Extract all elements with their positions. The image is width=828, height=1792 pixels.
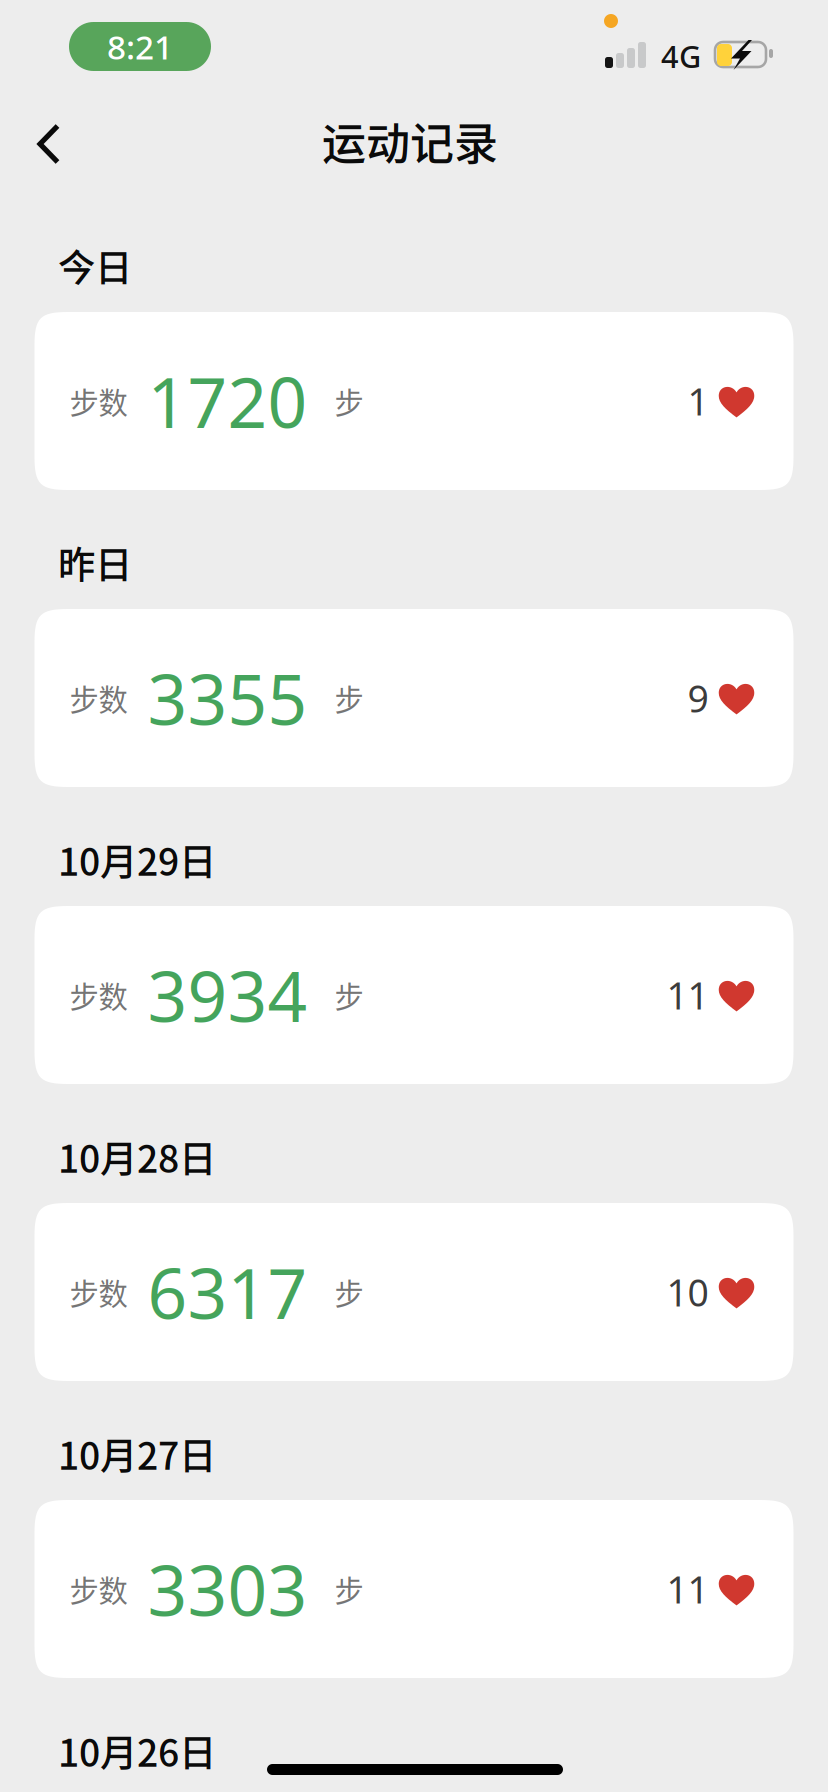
staticText: 1720 — [147, 355, 307, 447]
staticText: 步数 — [69, 677, 127, 719]
button[interactable]: 步数 — [34, 312, 793, 490]
staticText: 步数 — [69, 380, 127, 422]
button[interactable]: 返回 — [0, 99, 91, 189]
staticText: 步数 — [69, 1271, 127, 1313]
staticText: 今日 — [58, 238, 132, 293]
staticText: 步 — [334, 380, 363, 422]
staticText: 10月27日 — [58, 1426, 216, 1481]
staticText: 步 — [334, 1568, 363, 1610]
staticText: 步 — [334, 1271, 363, 1313]
staticText: 10月28日 — [58, 1129, 216, 1184]
staticText: 3355 — [147, 652, 307, 744]
staticText: 步 — [334, 974, 363, 1016]
button[interactable]: 步数 — [34, 1500, 793, 1678]
button[interactable]: 步数 — [34, 1203, 793, 1381]
staticText: 9 — [687, 673, 708, 723]
staticText: 步数 — [69, 974, 127, 1016]
staticText: 8:21 — [107, 24, 173, 69]
staticText: 步 — [334, 677, 363, 719]
staticText: 步数 — [69, 1568, 127, 1610]
staticText: 3303 — [147, 1543, 307, 1635]
staticText: 11 — [666, 1564, 708, 1614]
button[interactable]: 步数 — [34, 609, 793, 787]
staticText: 3934 — [147, 949, 307, 1041]
staticText: 昨日 — [58, 535, 132, 590]
staticText: 10 — [666, 1267, 708, 1317]
staticText: 11 — [666, 970, 708, 1020]
staticText: 10月29日 — [58, 832, 216, 887]
staticText: 6317 — [147, 1246, 307, 1338]
button[interactable]: 步数 — [34, 906, 793, 1084]
staticText: 1 — [687, 376, 708, 426]
staticText: 4G — [661, 36, 701, 76]
staticText: 运动记录 — [322, 109, 498, 173]
staticText: 10月26日 — [58, 1723, 216, 1778]
